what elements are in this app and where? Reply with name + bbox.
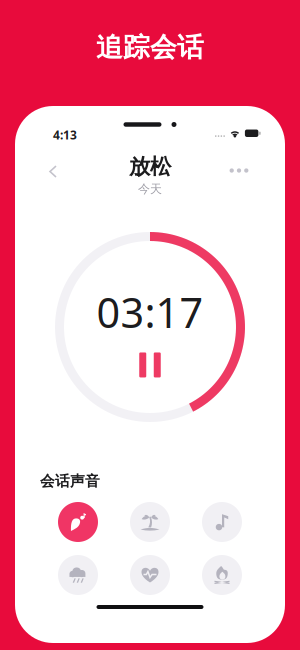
button[interactable]: Session sound: [202, 502, 242, 542]
button[interactable]: Session sound: [202, 555, 242, 595]
staticText: 03:17: [96, 285, 203, 339]
staticText: 今天: [138, 182, 162, 196]
button[interactable]: More options: [223, 154, 255, 186]
staticText: 4:13: [53, 127, 77, 143]
button[interactable]: Session sound: [130, 555, 170, 595]
staticText: 追踪会话: [96, 31, 204, 64]
button[interactable]: Session sound: [58, 502, 98, 542]
staticText: 会话声音: [40, 472, 100, 490]
staticText: 放松: [129, 153, 171, 180]
button[interactable]: Back: [37, 155, 69, 187]
button[interactable]: Session sound: [58, 555, 98, 595]
button[interactable]: Session sound: [130, 502, 170, 542]
